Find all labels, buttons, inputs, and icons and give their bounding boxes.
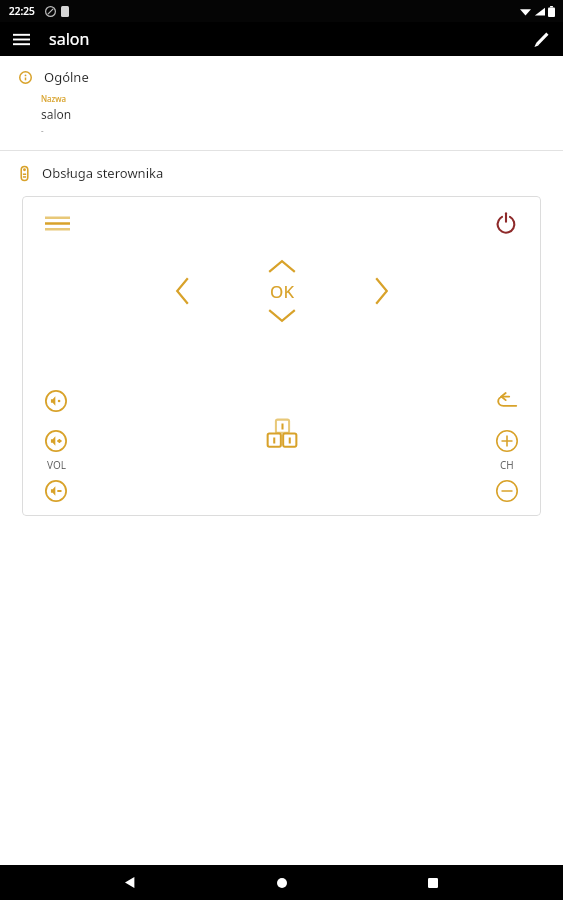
staticText: - xyxy=(41,125,44,136)
staticText: OK xyxy=(270,280,294,303)
button[interactable]: Power xyxy=(485,202,527,244)
button[interactable]: Mute xyxy=(39,384,73,418)
button[interactable]: Open navigation drawer xyxy=(4,22,38,56)
button[interactable]: Number keypad xyxy=(259,408,305,454)
button[interactable]: Left xyxy=(154,263,210,319)
button[interactable]: Recent apps xyxy=(412,865,454,900)
button[interactable]: Back xyxy=(490,384,524,418)
staticText: salon xyxy=(41,106,72,122)
button[interactable]: Volume up xyxy=(39,424,73,458)
button[interactable]: Up xyxy=(254,238,310,294)
staticText: VOL xyxy=(47,458,66,472)
button[interactable]: Right xyxy=(353,263,409,319)
button[interactable]: Channel down xyxy=(490,474,524,508)
staticText: Nazwa xyxy=(41,93,67,104)
button[interactable]: OK xyxy=(256,265,308,317)
staticText: 22:25 xyxy=(9,4,35,18)
button[interactable]: Channel up xyxy=(490,424,524,458)
button[interactable]: Home xyxy=(261,865,303,900)
staticText: Obsługa sterownika xyxy=(42,164,164,182)
button[interactable]: Down xyxy=(254,287,310,343)
button[interactable]: Volume down xyxy=(39,474,73,508)
staticText: CH xyxy=(500,458,514,472)
staticText: salon xyxy=(49,28,90,50)
button[interactable]: Remote menu xyxy=(36,202,78,244)
button[interactable]: Nazwa xyxy=(0,86,563,150)
button[interactable]: Edit xyxy=(525,22,559,56)
staticText: Ogólne xyxy=(44,68,89,86)
button[interactable]: Back xyxy=(109,865,151,900)
